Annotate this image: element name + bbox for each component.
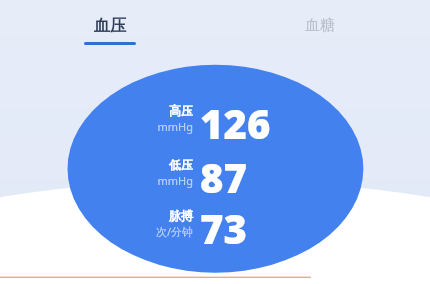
staticText: 高压 xyxy=(169,103,193,118)
staticText: 126 xyxy=(200,96,271,150)
button[interactable]: 高压 xyxy=(123,103,193,134)
button[interactable]: 73 xyxy=(200,201,247,255)
button[interactable]: 低压 xyxy=(123,157,193,188)
staticText: 87 xyxy=(200,150,247,204)
staticText: 次/分钟 xyxy=(155,224,193,239)
staticText: 血糖 xyxy=(305,16,335,35)
staticText: 血压 xyxy=(94,16,126,36)
staticText: 脉搏 xyxy=(169,208,193,223)
button[interactable]: 血糖 xyxy=(272,0,368,35)
button[interactable]: 87 xyxy=(200,150,247,204)
staticText: 低压 xyxy=(169,157,193,172)
staticText: mmHg xyxy=(157,173,193,188)
staticText: 73 xyxy=(200,201,247,255)
button[interactable]: 126 xyxy=(200,96,271,150)
button[interactable]: 脉搏 xyxy=(123,208,193,239)
staticText: mmHg xyxy=(157,119,193,134)
button[interactable]: 血压 xyxy=(62,0,158,45)
